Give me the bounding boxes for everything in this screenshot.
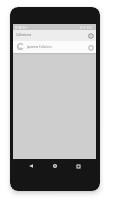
button[interactable]: Home [48,159,62,173]
button[interactable]: Back [24,159,38,173]
button[interactable]: More options [87,44,95,52]
staticText: Japanese Collection [27,45,52,49]
staticText: Collections [16,33,32,37]
button[interactable]: Recents [71,159,85,173]
button[interactable]: Info [87,32,95,40]
button[interactable]: Japanese Collection [13,41,96,53]
